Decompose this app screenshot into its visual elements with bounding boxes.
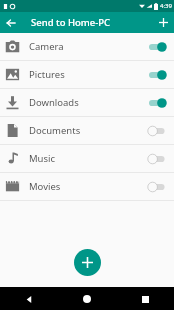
staticText: 4:39 [160, 2, 172, 10]
button[interactable]: Pictures [0, 61, 174, 88]
staticText: Send to Home-PC [31, 16, 111, 29]
staticText: Downloads [29, 96, 79, 109]
button[interactable]: Recents [134, 288, 156, 310]
button[interactable]: Documents [0, 117, 174, 144]
button[interactable]: Movies [0, 173, 174, 200]
button[interactable]: Add [153, 12, 174, 33]
staticText: Pictures [29, 68, 65, 81]
button[interactable]: Home [76, 288, 98, 310]
staticText: Music [29, 152, 56, 165]
button[interactable]: Downloads [0, 89, 174, 116]
button[interactable]: Add [74, 249, 101, 276]
staticText: Movies [29, 180, 61, 193]
button[interactable]: Camera [0, 33, 174, 60]
staticText: Documents [29, 124, 81, 137]
button[interactable]: Back [0, 12, 21, 33]
button[interactable]: Music [0, 145, 174, 172]
button[interactable]: Back [18, 288, 40, 310]
staticText: Camera [29, 40, 64, 53]
